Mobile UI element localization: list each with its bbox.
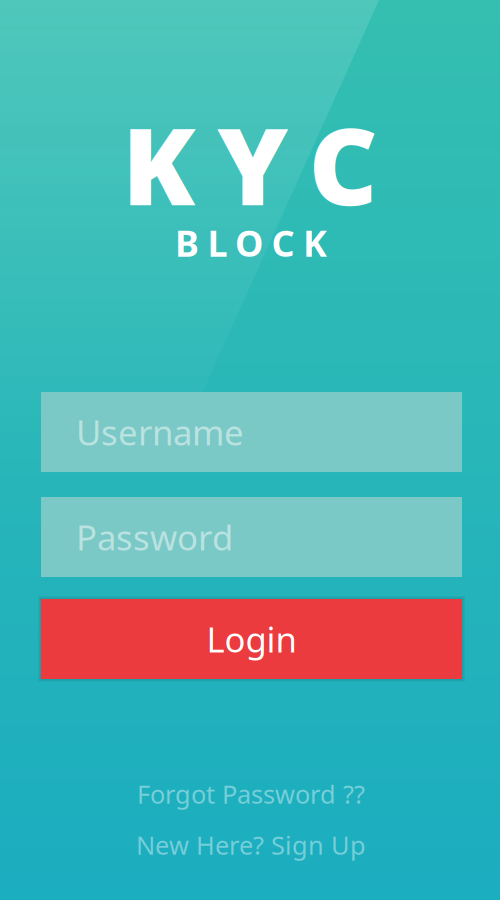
button[interactable]: New Here? Sign Up [131,825,371,865]
button[interactable]: Username [41,392,462,472]
staticText: Username [76,409,244,455]
staticText: KYC [122,93,378,235]
staticText: Password [76,514,233,560]
button[interactable]: Login [41,599,462,679]
staticText: BLOCK [175,219,327,267]
staticText: New Here? Sign Up [136,828,366,862]
button[interactable]: Forgot Password ?? [131,774,371,814]
staticText: Forgot Password ?? [137,777,365,811]
button[interactable]: Password [41,497,462,577]
staticText: Login [206,616,296,662]
